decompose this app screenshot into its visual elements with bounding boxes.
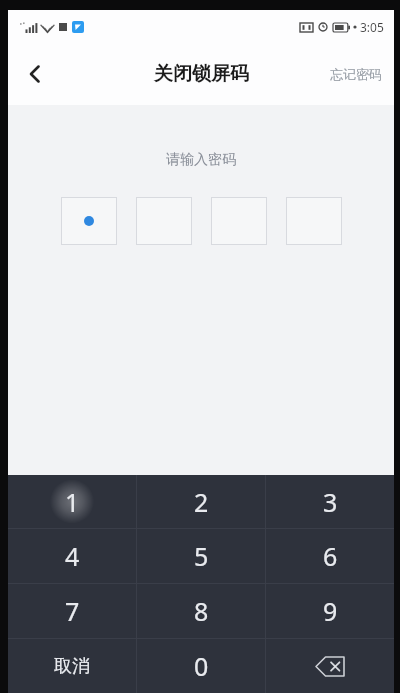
staticText: 4	[65, 539, 80, 573]
staticText: 请输入密码	[166, 151, 236, 169]
staticText: 1	[65, 485, 80, 519]
staticText: 3	[323, 485, 338, 519]
button[interactable]: 4	[8, 529, 136, 583]
button[interactable]: 2	[137, 475, 265, 528]
staticText: 0	[194, 649, 209, 683]
staticText: 9	[323, 594, 338, 628]
button[interactable]: 取消	[8, 639, 136, 693]
button[interactable]: 7	[8, 584, 136, 638]
staticText: 5	[194, 539, 209, 573]
button[interactable]: 密码输入框	[211, 197, 267, 245]
staticText: 6	[323, 539, 338, 573]
staticText: 关闭锁屏码	[154, 62, 249, 86]
staticText: 2	[194, 485, 209, 519]
staticText: 7	[65, 594, 80, 628]
button[interactable]: 返回	[8, 43, 62, 105]
staticText: 8	[194, 594, 209, 628]
button[interactable]: 0	[137, 639, 265, 693]
button[interactable]: 6	[266, 529, 394, 583]
staticText: 取消	[54, 655, 90, 678]
button[interactable]: 忘记密码	[318, 43, 394, 105]
button[interactable]: 删除	[266, 639, 394, 693]
staticText: 忘记密码	[330, 66, 382, 82]
button[interactable]: 密码输入框	[286, 197, 342, 245]
button[interactable]: 8	[137, 584, 265, 638]
button[interactable]: 3	[266, 475, 394, 528]
staticText: 3:05	[360, 19, 384, 35]
button[interactable]: 5	[137, 529, 265, 583]
button[interactable]: 密码输入框	[61, 197, 117, 245]
button[interactable]: 9	[266, 584, 394, 638]
button[interactable]: 密码输入框	[136, 197, 192, 245]
button[interactable]: 1	[8, 475, 136, 528]
